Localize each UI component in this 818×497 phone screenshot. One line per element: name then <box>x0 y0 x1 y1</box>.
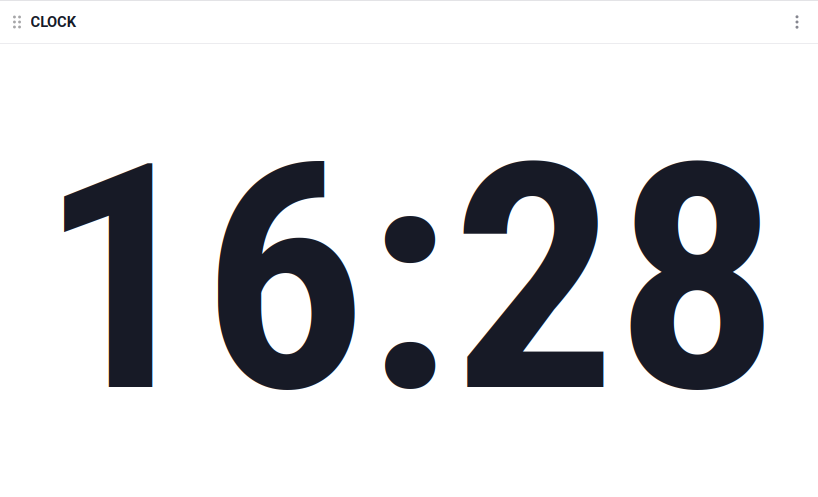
button[interactable]: Current time 16:28 <box>39 77 778 464</box>
button[interactable]: Move widget <box>0 0 30 43</box>
button[interactable]: CLOCK <box>30 13 76 31</box>
staticText: CLOCK <box>30 13 76 31</box>
staticText: 16:28 <box>39 95 778 464</box>
button[interactable]: More options <box>778 0 818 43</box>
